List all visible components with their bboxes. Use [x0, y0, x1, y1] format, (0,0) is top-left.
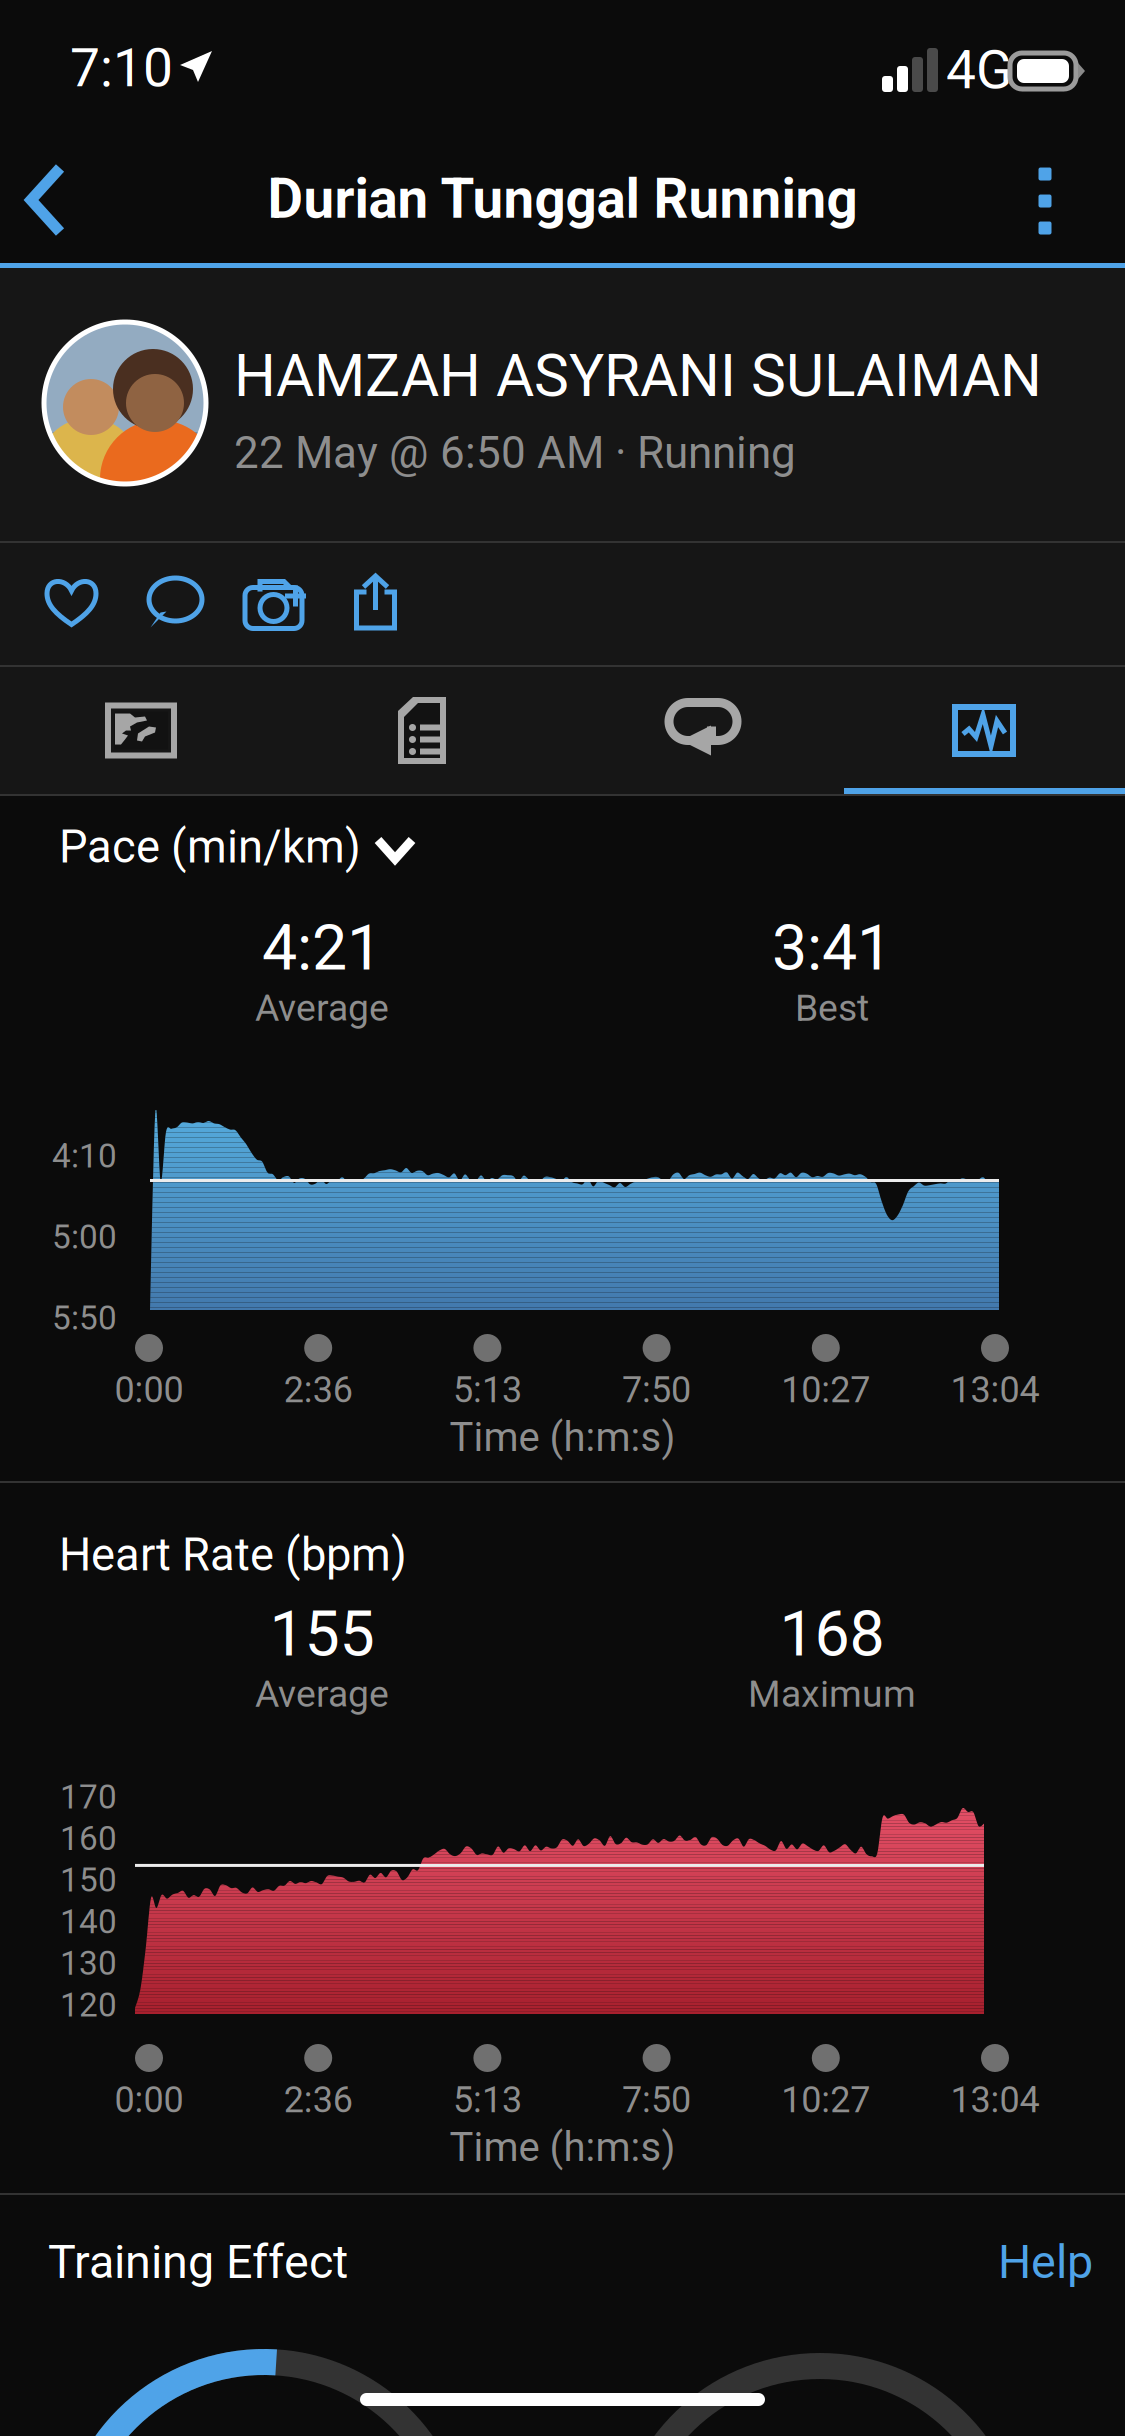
staticText: 168 [779, 1597, 884, 1671]
staticText: 2:36 [284, 1369, 353, 1411]
staticText: Heart Rate (bpm) [59, 1528, 407, 1581]
staticText: HAMZAH ASYRANI SULAIMAN [234, 342, 1042, 410]
staticText: 10:27 [781, 1369, 870, 1411]
staticText: 4:10 [52, 1136, 117, 1176]
staticText: 13:04 [950, 1369, 1039, 1411]
staticText: 4G [946, 39, 1012, 101]
staticText: 7:10 [70, 37, 173, 99]
staticText: 130 [60, 1944, 117, 1983]
staticText: Durian Tunggal Running [267, 167, 857, 231]
button[interactable]: Share [328, 560, 423, 646]
staticText: 2:36 [284, 2079, 353, 2121]
staticText: 10:27 [781, 2079, 870, 2121]
button[interactable]: Help [933, 2232, 1093, 2292]
staticText: Maximum [748, 1672, 916, 1716]
staticText: 5:00 [52, 1217, 117, 1257]
button[interactable]: Comment [128, 560, 223, 646]
staticText: 7:50 [622, 1369, 691, 1411]
button[interactable]: Details [302, 667, 542, 794]
staticText: 0:00 [114, 2079, 183, 2121]
button[interactable]: Charts [864, 667, 1104, 794]
staticText: 5:50 [52, 1298, 117, 1338]
button[interactable]: Add photo [228, 560, 323, 646]
staticText: 22 May @ 6:50 AM · Running [234, 427, 796, 479]
staticText: 160 [60, 1819, 117, 1858]
staticText: 170 [60, 1777, 117, 1817]
staticText: 5:13 [453, 1369, 522, 1411]
staticText: Average [255, 1672, 389, 1716]
staticText: 140 [60, 1902, 117, 1941]
staticText: 0:00 [114, 1369, 183, 1411]
staticText: 3:41 [772, 911, 892, 985]
staticText: Pace (min/km) [59, 820, 361, 873]
staticText: Time (h:m:s) [449, 1414, 675, 1461]
staticText: Training Effect [48, 2235, 348, 2289]
button[interactable]: More options [995, 148, 1095, 254]
staticText: 13:04 [950, 2079, 1039, 2121]
staticText: 4:21 [262, 911, 382, 985]
button[interactable]: Back [16, 146, 146, 256]
staticText: 150 [60, 1861, 117, 1900]
staticText: Best [795, 986, 869, 1030]
staticText: 7:50 [622, 2079, 691, 2121]
button[interactable]: Map [21, 667, 261, 794]
staticText: 5:13 [453, 2079, 522, 2121]
button[interactable]: Laps [583, 667, 823, 794]
staticText: Help [998, 2235, 1093, 2289]
staticText: 120 [60, 1985, 117, 2025]
button[interactable]: Like [24, 560, 119, 646]
staticText: Average [255, 986, 389, 1030]
staticText: 155 [269, 1597, 374, 1671]
staticText: Time (h:m:s) [449, 2124, 675, 2171]
